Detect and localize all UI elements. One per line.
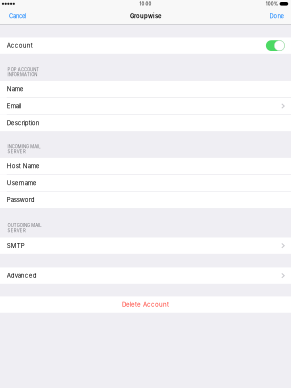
staticText: OUTGOING MAIL SERVER <box>8 223 41 233</box>
button[interactable]: SMTP <box>0 237 291 254</box>
button[interactable]: Username <box>0 175 291 191</box>
staticText: Done <box>269 12 283 20</box>
staticText: Cancel <box>9 12 26 20</box>
button[interactable]: Advanced <box>0 267 291 284</box>
button[interactable]: Email <box>0 98 291 114</box>
button[interactable]: Name <box>0 81 291 97</box>
staticText: 100% <box>266 1 278 7</box>
staticText: Advanced <box>7 272 37 279</box>
button[interactable]: Account <box>0 37 291 54</box>
staticText: Host Name <box>7 162 40 170</box>
button[interactable]: Cancel <box>0 9 31 23</box>
staticText: Email <box>7 102 21 110</box>
staticText: SMTP <box>7 242 25 249</box>
button[interactable]: Password <box>0 192 291 208</box>
button[interactable]: Done <box>264 9 291 23</box>
button[interactable]: Delete Account <box>0 296 291 313</box>
staticText: INCOMING MAIL SERVER <box>8 144 40 154</box>
staticText: Delete Account <box>122 301 169 308</box>
button[interactable]: Host Name <box>0 158 291 174</box>
staticText: Groupwise <box>130 12 161 20</box>
staticText: Username <box>7 179 37 187</box>
staticText: POP ACCOUNT INFORMATION <box>8 67 39 77</box>
staticText: Password <box>7 196 35 203</box>
staticText: Account <box>7 42 33 49</box>
staticText: Description <box>7 119 40 127</box>
button[interactable]: Description <box>0 115 291 131</box>
staticText: 10:00 <box>139 1 151 7</box>
staticText: Name <box>7 85 24 93</box>
